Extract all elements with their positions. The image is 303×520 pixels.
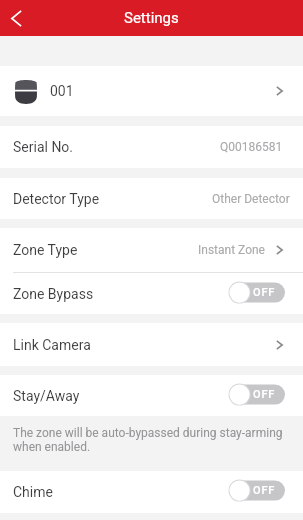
button[interactable]: Stay/Away switch, off (229, 385, 285, 407)
staticText: Other Detector (212, 192, 290, 206)
button[interactable]: Chime (0, 471, 303, 513)
staticText: OFF (253, 484, 276, 497)
staticText: Settings (124, 9, 179, 27)
staticText: Link Camera (13, 337, 91, 353)
staticText: 001 (50, 83, 74, 99)
staticText: Serial No. (13, 139, 74, 155)
button[interactable]: Zone Bypass switch, off (229, 283, 285, 305)
button[interactable]: Serial No. (0, 126, 303, 168)
button[interactable]: Stay/Away (0, 375, 303, 416)
staticText: Detector Type (13, 191, 100, 207)
button[interactable]: Back (0, 2, 32, 34)
staticText: Zone Type (13, 242, 78, 258)
button[interactable]: Link Camera (0, 323, 303, 366)
staticText: OFF (253, 286, 276, 299)
staticText: Zone Bypass (13, 286, 94, 302)
staticText: The zone will be auto-bypassed during st… (13, 426, 287, 454)
button[interactable]: Zone Type (0, 228, 303, 272)
staticText: Chime (13, 484, 53, 500)
staticText: Instant Zone (198, 243, 265, 257)
button[interactable]: Chime switch, off (229, 481, 285, 503)
staticText: Stay/Away (13, 388, 80, 404)
button[interactable]: 001 (0, 66, 303, 116)
staticText: OFF (253, 388, 276, 401)
button[interactable]: Zone Bypass (0, 273, 303, 314)
button[interactable]: Detector Type (0, 178, 303, 219)
staticText: Q00186581 (220, 140, 283, 154)
